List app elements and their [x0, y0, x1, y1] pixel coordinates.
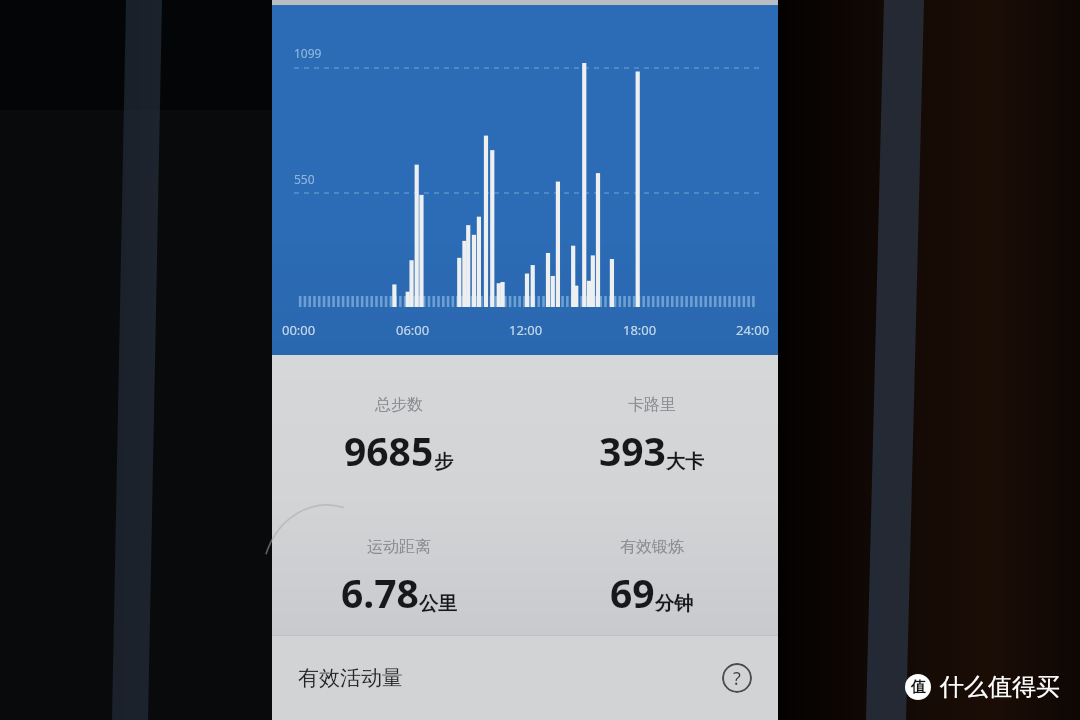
staticText: 值: [911, 678, 926, 697]
staticText: 18:00: [623, 321, 657, 339]
staticText: 393: [599, 424, 666, 477]
staticText: 什么值得买: [940, 672, 1060, 702]
staticText: 6.78: [341, 566, 419, 619]
staticText: 运动距离: [367, 537, 431, 557]
button[interactable]: 卡路里: [525, 395, 778, 477]
button[interactable]: 有效活动量: [272, 636, 778, 720]
staticText: ?: [733, 666, 741, 691]
button[interactable]: 运动距离: [272, 537, 525, 619]
staticText: 69: [610, 566, 655, 619]
staticText: 24:00: [736, 321, 770, 339]
staticText: 有效锻炼: [620, 537, 684, 557]
staticText: 00:00: [282, 321, 316, 339]
button[interactable]: 总步数: [272, 395, 525, 477]
staticText: 12:00: [509, 321, 543, 339]
staticText: 大卡: [666, 450, 704, 474]
button[interactable]: Help: [722, 663, 752, 693]
button[interactable]: 有效锻炼: [525, 537, 778, 619]
staticText: 9685: [344, 424, 434, 477]
staticText: 总步数: [375, 395, 423, 415]
staticText: 分钟: [655, 592, 693, 616]
staticText: 06:00: [396, 321, 430, 339]
staticText: 步: [434, 450, 453, 474]
staticText: 1099: [294, 45, 322, 61]
staticText: 卡路里: [628, 395, 676, 415]
staticText: 公里: [419, 592, 457, 616]
staticText: 550: [294, 171, 315, 187]
staticText: 有效活动量: [298, 665, 403, 691]
